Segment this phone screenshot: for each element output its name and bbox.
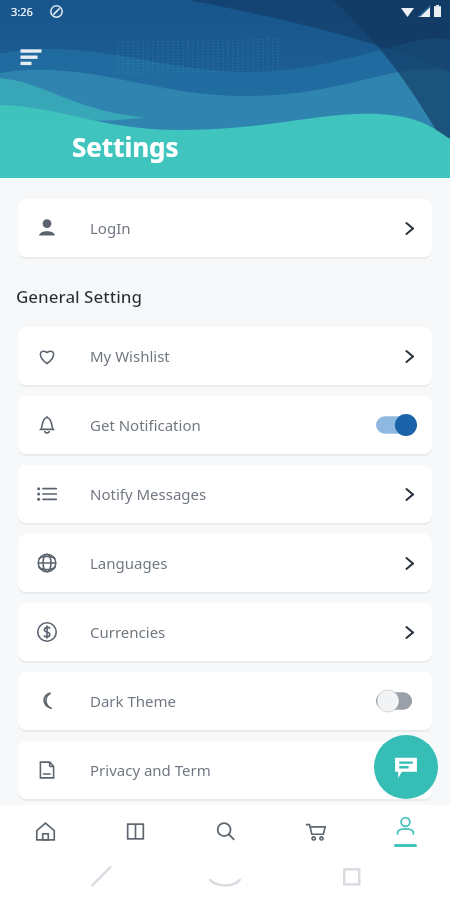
staticText: Currencies [90,622,166,642]
staticText: Notify Messages [90,484,207,504]
button[interactable]: Privacy and Term [18,741,432,799]
staticText: Dark Theme [90,691,177,711]
staticText: 3:26 [11,4,33,19]
staticText: General Setting [16,285,143,308]
button[interactable]: Notify Messages [18,465,432,523]
button[interactable]: Currencies [18,603,432,661]
button[interactable]: Profile [360,805,450,857]
staticText: LogIn [90,218,131,238]
button[interactable]: Chat [374,735,438,799]
staticText: Languages [90,553,168,573]
button[interactable]: Languages [18,534,432,592]
button[interactable]: Catalog [90,805,180,857]
button[interactable]: Home [0,805,90,857]
button[interactable]: Search [180,805,270,857]
button[interactable]: Menu [14,40,48,74]
button[interactable]: Dark Theme [18,672,432,730]
button[interactable]: Get Notification [18,396,432,454]
button[interactable]: Toggle off [376,689,418,713]
button[interactable]: My Wishlist [18,327,432,385]
staticText: Settings [72,129,179,164]
button[interactable]: Toggle on [376,413,418,437]
button[interactable]: Cart [270,805,360,857]
staticText: My Wishlist [90,346,170,366]
staticText: Get Notification [90,415,201,435]
staticText: Privacy and Term [90,760,211,780]
button[interactable]: LogIn [18,199,432,257]
